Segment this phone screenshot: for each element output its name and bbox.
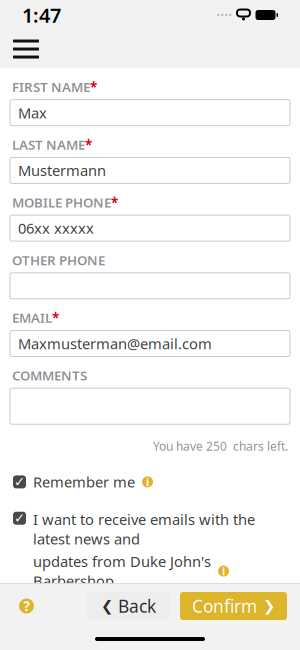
staticText: updates from Duke John's Barbershop: [33, 552, 211, 591]
button[interactable]: I agree to the following cancellation po…: [13, 609, 287, 648]
staticText: *: [111, 193, 118, 211]
staticText: ❮: [101, 598, 113, 614]
staticText: ✓: [14, 511, 25, 526]
button[interactable]: [10, 273, 290, 299]
staticText: Confirm: [192, 594, 257, 617]
button[interactable]: Max: [10, 100, 290, 126]
staticText: Maxmusterman@email.com: [18, 334, 212, 353]
staticText: *: [85, 136, 92, 153]
staticText: COMMENTS: [12, 366, 87, 384]
staticText: Remember me: [33, 472, 135, 492]
button[interactable]: ✓: [0, 510, 300, 590]
staticText: Back: [118, 594, 156, 617]
staticText: FIRST NAME: [12, 78, 90, 96]
staticText: 06xx xxxxx: [18, 218, 94, 238]
staticText: i: [146, 475, 149, 489]
button[interactable]: ✓: [0, 472, 300, 492]
button[interactable]: Menu: [0, 31, 52, 66]
staticText: MOBILE PHONE: [12, 193, 111, 211]
staticText: i: [222, 564, 225, 578]
button[interactable]: ❮: [87, 592, 170, 620]
staticText: Max: [18, 103, 47, 122]
staticText: ?: [23, 597, 29, 615]
button[interactable]: Mustermann: [10, 157, 290, 183]
staticText: I agree to the following cancellation po…: [33, 609, 194, 648]
staticText: *: [52, 309, 59, 326]
button[interactable]: [10, 388, 290, 424]
button[interactable]: 06xx xxxxx: [10, 215, 290, 241]
staticText: OTHER PHONE: [12, 251, 105, 269]
button[interactable]: Maxmusterman@email.com: [10, 330, 290, 356]
button[interactable]: Confirm: [180, 592, 287, 620]
button[interactable]: Help: [13, 591, 40, 621]
staticText: *: [90, 78, 97, 96]
staticText: You have 250 chars left.: [153, 438, 288, 454]
staticText: EMAIL: [12, 309, 52, 326]
staticText: ❯: [263, 598, 275, 614]
staticText: Mustermann: [18, 161, 106, 180]
staticText: 1:47: [22, 2, 61, 28]
staticText: LAST NAME: [12, 136, 85, 153]
staticText: ✓: [14, 474, 25, 489]
staticText: I want to receive emails with the latest…: [33, 510, 255, 549]
